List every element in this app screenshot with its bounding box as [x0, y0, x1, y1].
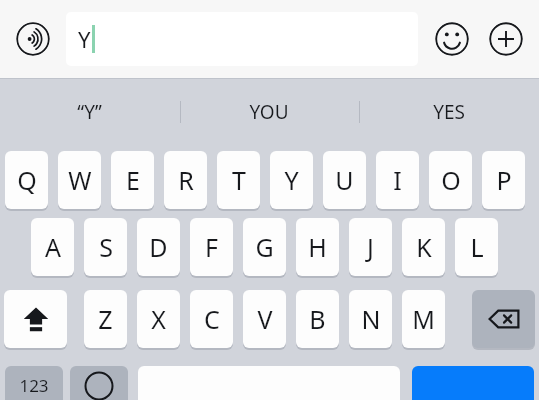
staticText: L — [470, 230, 484, 264]
staticText: D — [149, 230, 168, 264]
staticText: YOU — [249, 99, 289, 125]
button[interactable]: X — [137, 290, 180, 348]
button[interactable]: D — [137, 218, 180, 276]
button[interactable]: L — [455, 218, 498, 276]
button[interactable]: Audio message — [16, 22, 50, 56]
staticText: J — [367, 230, 374, 264]
staticText: S — [99, 230, 113, 264]
button[interactable]: “Y” — [0, 79, 179, 145]
other: Change keyboard — [70, 366, 128, 400]
button[interactable]: Q — [5, 151, 48, 209]
button[interactable]: A — [31, 218, 74, 276]
staticText: W — [68, 163, 92, 197]
staticText: G — [255, 230, 274, 264]
staticText: O — [441, 163, 461, 197]
staticText: I — [393, 163, 402, 197]
button[interactable]: YES — [359, 79, 539, 145]
staticText: R — [178, 163, 194, 197]
button[interactable] — [70, 366, 128, 400]
staticText: M — [412, 302, 435, 336]
staticText: X — [151, 302, 166, 336]
button[interactable]: 123 — [5, 366, 63, 400]
other: Backspace — [472, 290, 535, 350]
staticText: E — [126, 163, 140, 197]
button[interactable]: P — [482, 151, 525, 209]
button[interactable]: C — [190, 290, 233, 348]
button[interactable]: H — [296, 218, 339, 276]
button[interactable]: J — [349, 218, 392, 276]
button[interactable] — [4, 290, 67, 348]
button[interactable]: E — [111, 151, 154, 209]
staticText: U — [335, 163, 354, 197]
button[interactable]: Add attachment — [489, 22, 523, 56]
staticText: YES — [433, 99, 465, 125]
button[interactable]: S — [84, 218, 127, 276]
staticText: Q — [17, 163, 37, 197]
staticText: P — [496, 163, 512, 197]
staticText: K — [416, 230, 432, 264]
staticText: Y — [78, 24, 91, 54]
button[interactable]: Y — [270, 151, 313, 209]
staticText: H — [308, 230, 327, 264]
button[interactable]: Z — [84, 290, 127, 348]
button[interactable]: M — [402, 290, 445, 348]
staticText: C — [204, 302, 220, 336]
other: Shift — [4, 290, 67, 350]
staticText: F — [205, 230, 218, 264]
button[interactable]: G — [243, 218, 286, 276]
button[interactable]: Y — [66, 12, 418, 66]
button[interactable] — [412, 366, 534, 400]
staticText: 123 — [19, 374, 49, 397]
button[interactable]: U — [323, 151, 366, 209]
staticText: Y — [284, 163, 299, 197]
button[interactable]: R — [164, 151, 207, 209]
other: Send — [412, 366, 534, 400]
button[interactable]: B — [296, 290, 339, 348]
staticText: A — [45, 230, 61, 264]
staticText: B — [309, 302, 326, 336]
button[interactable]: V — [243, 290, 286, 348]
button[interactable]: YOU — [179, 79, 359, 145]
button[interactable]: F — [190, 218, 233, 276]
staticText: V — [257, 302, 273, 336]
staticText: “Y” — [77, 99, 102, 125]
staticText: Z — [98, 302, 113, 336]
button[interactable]: K — [402, 218, 445, 276]
button[interactable]: N — [349, 290, 392, 348]
button[interactable] — [472, 290, 535, 348]
staticText: T — [232, 163, 246, 197]
button[interactable]: T — [217, 151, 260, 209]
button[interactable]: Emoji — [435, 22, 469, 56]
button[interactable]: W — [58, 151, 101, 209]
button[interactable]: O — [429, 151, 472, 209]
staticText: N — [361, 302, 381, 336]
button[interactable]: I — [376, 151, 419, 209]
